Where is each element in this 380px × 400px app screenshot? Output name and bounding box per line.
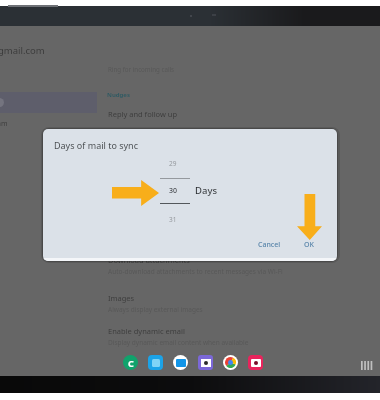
staticText: Enable dynamic email [108,326,185,336]
staticText: Nudges [107,91,130,99]
button[interactable]: Teams [173,355,188,370]
staticText: Download attachments [108,255,190,265]
staticText: am [0,119,8,129]
staticText: 29 [169,159,177,168]
button[interactable]: OK [300,237,318,253]
button[interactable]: Chrome [223,355,238,370]
staticText: gmail.com [0,44,45,57]
button[interactable]: Enable dynamic email [108,326,338,347]
button[interactable]: Meet [148,355,163,370]
button[interactable]: Cancel [254,237,285,253]
other: Overview [361,361,372,370]
staticText: Days of mail to sync [54,139,139,151]
button[interactable]: Chat [123,355,138,370]
staticText: Reply and follow up [108,109,178,119]
button[interactable]: Images [108,293,338,314]
staticText: Always display external images [108,305,203,314]
staticText: 30 [169,186,178,196]
staticText: Cancel [258,240,281,250]
button[interactable]: Outlook [198,355,213,370]
staticText: Auto-download attachments to recent mess… [108,267,283,276]
button[interactable]: Download attachments [108,255,338,276]
staticText: Days [195,184,218,197]
staticText: Ring for incoming calls [108,65,175,73]
staticText: Display dynamic email content when avail… [108,338,249,347]
staticText: OK [304,240,314,250]
staticText: C [128,357,134,369]
staticText: Images [108,293,135,303]
staticText: 31 [169,215,177,224]
button[interactable]: Photos [248,355,263,370]
